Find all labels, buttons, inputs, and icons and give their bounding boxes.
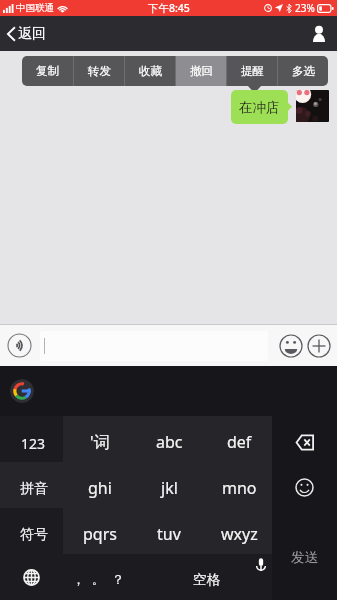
staticText: 拼音 [20,480,48,498]
button[interactable]: 在冲店 [231,90,288,124]
button[interactable]: Google [10,379,34,403]
button[interactable]: tuv [132,508,202,554]
staticText: 中国联通 [16,2,54,14]
button[interactable]: Voice input [7,333,32,358]
staticText: 发送 [291,549,318,566]
button[interactable]: Change keyboard [0,554,63,600]
button[interactable]: ghi [63,462,132,508]
button[interactable]: Emoji [279,334,303,358]
button[interactable]: Contact info [301,16,337,51]
button[interactable]: 符号 [0,508,63,554]
button[interactable]: jkl [132,462,202,508]
button[interactable]: wxyz [202,508,272,554]
staticText: wxyz [221,523,258,545]
staticText: 23% [295,1,315,15]
button[interactable]: 提醒 [227,56,277,86]
button[interactable]: ， 。 ？ [63,554,133,600]
button[interactable]: 复制 [22,56,73,86]
button[interactable]: Avatar [296,90,329,122]
button[interactable]: More [307,334,331,358]
button[interactable]: def [202,416,272,462]
button[interactable]: 发送 [272,508,337,600]
staticText: 在冲店 [239,99,280,116]
staticText: ， 。 ？ [72,570,125,588]
button[interactable]: 撤回 [176,56,226,86]
button[interactable]: Backspace [272,416,337,462]
staticText: tuv [157,523,181,545]
button[interactable]: 转发 [74,56,124,86]
button[interactable]: 拼音 [0,462,63,508]
staticText: def [227,431,252,453]
staticText: 收藏 [139,64,162,78]
button[interactable]: 多选 [278,56,328,86]
button[interactable]: mno [202,462,272,508]
staticText: mno [222,477,257,499]
button[interactable] [40,331,268,361]
staticText: 转发 [88,64,111,78]
staticText: 多选 [292,64,315,78]
staticText: 下午8:45 [148,1,190,15]
button[interactable]: 收藏 [125,56,175,86]
staticText: 复制 [36,64,59,78]
staticText: 撤回 [190,64,213,78]
staticText: 提醒 [241,64,264,78]
staticText: 返回 [18,25,46,43]
button[interactable]: pqrs [63,508,132,554]
button[interactable]: abc [132,416,202,462]
staticText: abc [156,431,183,453]
staticText: 空格 [193,571,220,588]
button[interactable]: 123 [0,416,63,462]
button[interactable]: Emoji keyboard [272,462,337,508]
staticText: pqrs [83,523,117,545]
button[interactable]: '词 [63,416,132,462]
staticText: ghi [88,477,112,499]
button[interactable]: 返回 [0,16,56,51]
button[interactable]: 空格 [133,554,272,600]
staticText: 123 [21,434,46,453]
staticText: jkl [161,477,178,499]
staticText: 符号 [20,526,48,544]
staticText: '词 [90,431,110,453]
